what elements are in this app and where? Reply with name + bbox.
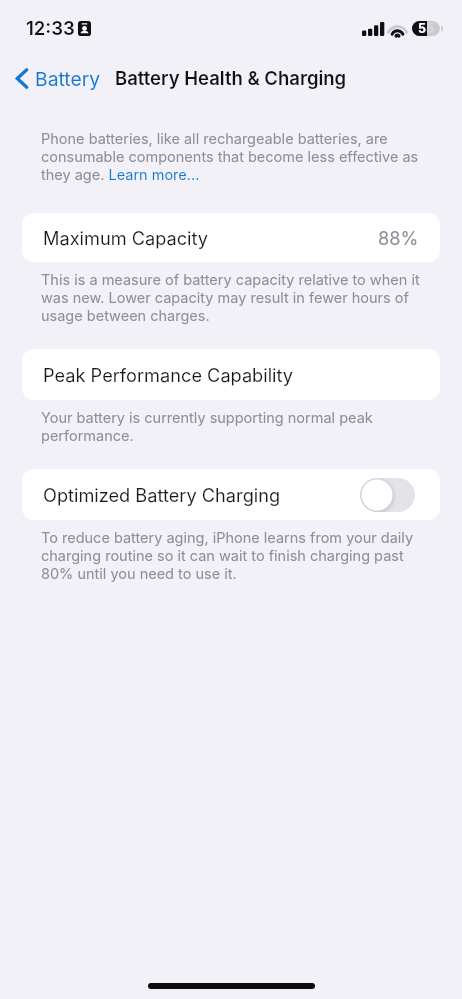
staticText: Optimized Battery Charging [43, 484, 281, 506]
staticText: 5 [418, 21, 426, 36]
staticText: Battery [35, 67, 101, 90]
button[interactable]: Maximum Capacity [22, 213, 440, 262]
button[interactable]: Optimized Battery Charging [22, 469, 440, 520]
staticText: Your battery is currently supporting nor… [41, 409, 426, 445]
staticText: Maximum Capacity [43, 227, 209, 249]
button[interactable]: Back [15, 67, 101, 90]
staticText: To reduce battery aging, iPhone learns f… [41, 529, 426, 583]
staticText: 12:33 [26, 17, 75, 39]
button[interactable]: Peak Performance Capability [22, 349, 440, 400]
button[interactable]: Optimized Battery Charging toggle [360, 478, 415, 512]
staticText: 88% [378, 227, 419, 249]
staticText: This is a measure of battery capacity re… [41, 271, 426, 325]
staticText: 5 [426, 21, 434, 36]
staticText: Phone batteries, like all rechargeable b… [41, 130, 426, 184]
staticText: Peak Performance Capability [43, 364, 293, 386]
staticText: Battery Health & Charging [115, 67, 347, 89]
other: Back [15, 67, 29, 90]
